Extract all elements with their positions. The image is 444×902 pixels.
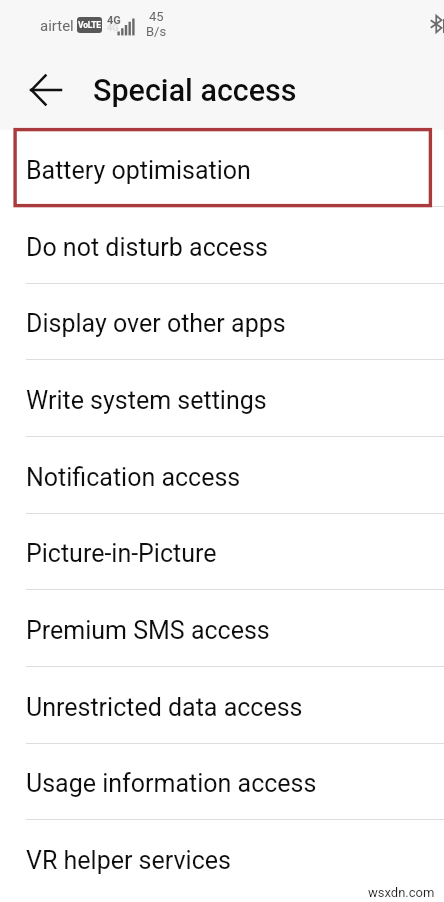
staticText: Do not disturb access — [26, 233, 268, 262]
button[interactable]: Display over other apps — [0, 283, 444, 360]
staticText: Unrestricted data access — [26, 693, 303, 722]
staticText: VoLTE — [78, 20, 101, 30]
staticText: Write system settings — [26, 386, 267, 415]
staticText: Battery optimisation — [26, 156, 251, 185]
button[interactable]: Notification access — [0, 437, 444, 514]
staticText: VR helper services — [26, 846, 231, 875]
staticText: Premium SMS access — [26, 616, 270, 645]
button[interactable]: Do not disturb access — [0, 207, 444, 284]
button[interactable]: Usage information access — [0, 743, 444, 820]
staticText: 4G — [107, 23, 119, 34]
staticText: Notification access — [26, 463, 241, 492]
staticText: 4G — [107, 14, 121, 27]
other: Bluetooth — [430, 15, 442, 33]
staticText: wsxdn.com — [368, 885, 435, 900]
staticText: Picture-in-Picture — [26, 539, 217, 568]
button[interactable]: Picture-in-Picture — [0, 513, 444, 590]
button[interactable]: VR helper services — [0, 820, 444, 897]
staticText: airtel — [40, 17, 74, 35]
staticText: Display over other apps — [26, 309, 286, 338]
staticText: B/s — [146, 24, 167, 39]
button[interactable]: Navigate up — [22, 66, 70, 114]
staticText: Usage information access — [26, 769, 317, 798]
staticText: Special access — [93, 73, 297, 109]
button[interactable]: Battery optimisation — [0, 130, 444, 207]
staticText: 45 — [149, 9, 164, 24]
button[interactable]: Premium SMS access — [0, 590, 444, 667]
button[interactable]: Write system settings — [0, 360, 444, 437]
button[interactable]: Unrestricted data access — [0, 667, 444, 744]
